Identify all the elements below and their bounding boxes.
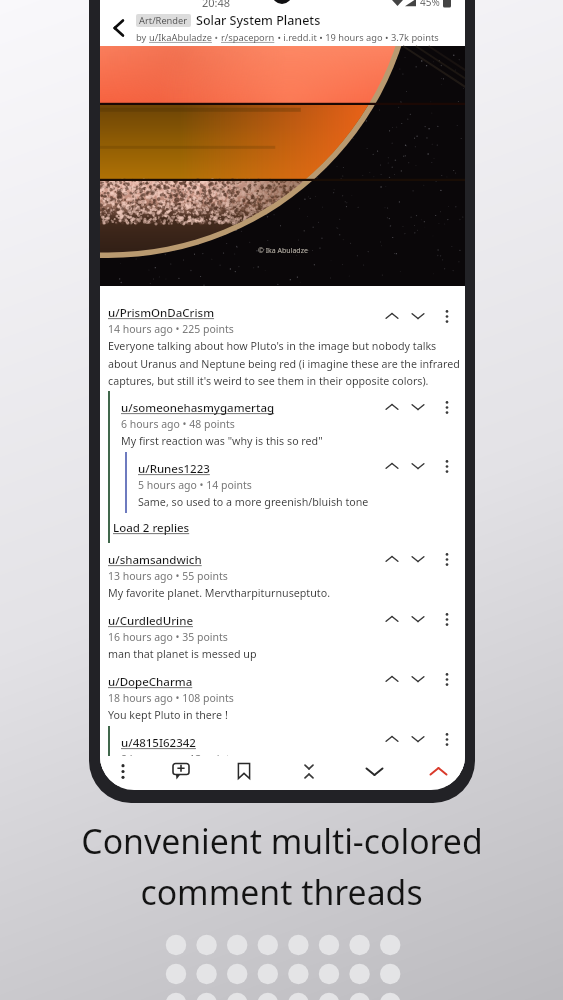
staticText: 8 hours ago • 13 points — [121, 752, 235, 766]
staticText: My first reaction was "why is this so re… — [121, 434, 323, 449]
staticText: man that planet is messed up — [108, 647, 257, 662]
staticText: u/4815I62342 — [121, 735, 196, 751]
staticText: 14 hours ago • 225 points — [108, 322, 234, 336]
staticText: 13 hours ago • 55 points — [108, 569, 228, 583]
staticText: Art/Render — [139, 14, 188, 27]
button[interactable]: Upvote — [379, 305, 405, 327]
button[interactable]: Upvote — [379, 455, 405, 477]
button[interactable]: Next comment — [348, 756, 400, 786]
staticText: 20:48 — [202, 0, 231, 10]
staticText: Solar System Planets — [196, 12, 321, 29]
button[interactable]: Upvote — [379, 728, 405, 750]
button[interactable]: Downvote — [405, 728, 430, 750]
staticText: 16 hours ago • 35 points — [108, 630, 228, 644]
staticText: u/CurdledUrine — [108, 613, 194, 629]
button[interactable]: Overflow menu — [100, 756, 149, 786]
button[interactable]: Upvote — [379, 396, 405, 418]
button[interactable]: u/someonehasmygamertag — [113, 391, 465, 452]
staticText: u/PrismOnDaCrism — [108, 305, 215, 321]
button[interactable]: Upvote — [379, 668, 405, 690]
button[interactable]: Load 2 replies — [113, 520, 190, 536]
button[interactable]: More options — [430, 728, 464, 750]
button[interactable]: Save — [218, 756, 270, 786]
staticText: by — [136, 31, 149, 44]
button[interactable]: u/4815I62342 — [113, 726, 465, 769]
button[interactable]: Add comment — [155, 756, 207, 786]
staticText: You kept Pluto in there ! — [108, 708, 228, 723]
staticText: 45% — [420, 0, 440, 9]
staticText: © Ika Abuladze — [258, 246, 308, 256]
button[interactable]: u/CurdledUrine — [100, 604, 465, 665]
button[interactable]: Downvote — [405, 668, 430, 690]
button[interactable]: u/shamsandwich — [100, 543, 465, 604]
button[interactable]: u/DopeCharma — [100, 665, 465, 726]
staticText: Convenient multi-colored — [81, 818, 483, 864]
staticText: u/Runes1223 — [138, 461, 210, 477]
button[interactable]: Downvote — [405, 305, 430, 327]
button[interactable]: More options — [430, 396, 464, 418]
staticText: u/someonehasmygamertag — [121, 400, 275, 416]
staticText: 6 hours ago • 48 points — [121, 417, 235, 431]
button[interactable]: Downvote — [405, 548, 430, 570]
staticText: r/spaceporn — [221, 31, 275, 44]
button[interactable]: More options — [430, 548, 464, 570]
staticText: Same, so used to a more greenish/bluish … — [138, 495, 369, 510]
button[interactable]: More options — [430, 455, 464, 477]
staticText: u/IkaAbuladze — [149, 31, 212, 44]
button[interactable]: Upvote — [379, 548, 405, 570]
staticText: u/DopeCharma — [108, 674, 193, 690]
staticText: 18 hours ago • 108 points — [108, 691, 234, 705]
button[interactable]: Downvote — [405, 608, 430, 630]
button[interactable]: u/PrismOnDaCrism — [100, 296, 465, 391]
button[interactable]: More options — [430, 305, 464, 327]
staticText: • — [212, 31, 221, 44]
button[interactable]: Downvote — [405, 455, 430, 477]
button[interactable]: More options — [430, 668, 464, 690]
staticText: u/shamsandwich — [108, 552, 202, 568]
button[interactable]: Collapse thread — [283, 756, 335, 786]
staticText: My favorite planet. Mervtharpiturnuseptu… — [108, 586, 331, 601]
button[interactable]: Previous comment — [412, 756, 464, 786]
button[interactable]: More options — [430, 608, 464, 630]
button[interactable]: Downvote — [405, 396, 430, 418]
button[interactable]: Back — [102, 11, 136, 45]
staticText: comment threads — [140, 869, 423, 915]
staticText: • i.redd.it • 19 hours ago • 3.7k points — [275, 31, 439, 44]
button[interactable]: u/Runes1223 — [130, 452, 465, 513]
staticText: Everyone talking about how Pluto's in th… — [108, 339, 464, 388]
button[interactable]: Upvote — [379, 608, 405, 630]
staticText: 5 hours ago • 14 points — [138, 478, 252, 492]
